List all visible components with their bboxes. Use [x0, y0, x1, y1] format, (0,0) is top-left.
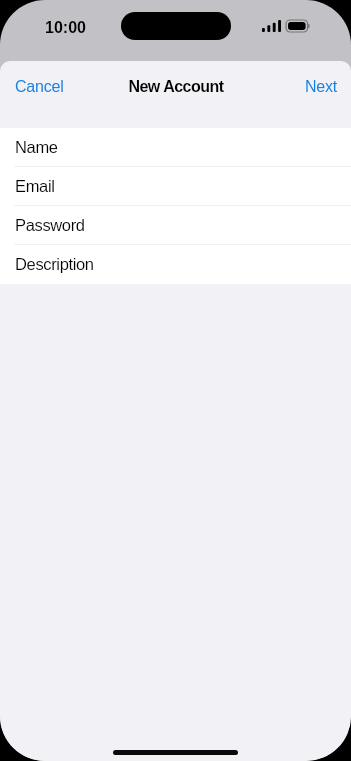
button[interactable]: Password [0, 206, 351, 245]
button[interactable]: Description [0, 245, 351, 284]
other: Home indicator [113, 750, 238, 755]
button[interactable]: Cancel [0, 75, 74, 99]
other: Battery full [286, 20, 309, 32]
button[interactable]: Next [295, 75, 351, 99]
button[interactable]: Email [0, 167, 351, 206]
staticText: Cancel [15, 78, 64, 96]
staticText: Name [15, 138, 58, 156]
staticText: New Account [128, 78, 224, 96]
staticText: Next [305, 78, 338, 96]
staticText: 10:00 [45, 19, 86, 37]
staticText: Email [15, 177, 55, 195]
staticText: Description [15, 255, 94, 273]
staticText: Password [15, 216, 85, 234]
button[interactable]: Name [0, 128, 351, 167]
other: Cellular signal strength [262, 20, 281, 32]
